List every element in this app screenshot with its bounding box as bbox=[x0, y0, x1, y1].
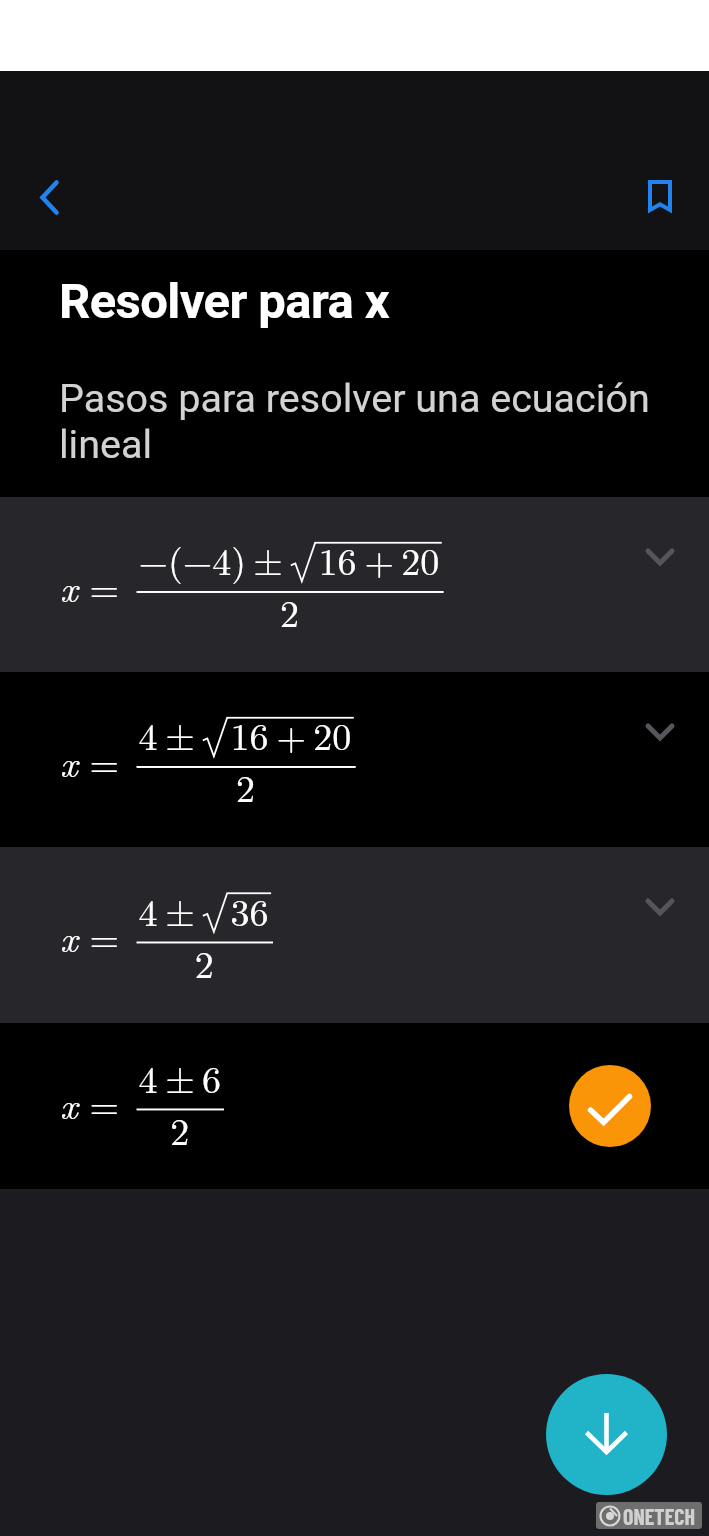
button[interactable]: Expandir paso bbox=[0, 847, 709, 1023]
button[interactable]: Resultado correcto bbox=[0, 1023, 709, 1189]
button[interactable]: Expandir paso bbox=[630, 702, 690, 762]
button[interactable]: Guardar bbox=[628, 164, 692, 228]
button[interactable]: Expandir paso bbox=[630, 527, 690, 587]
staticText: Pasos para resolver una ecuación lineal bbox=[59, 375, 709, 467]
button[interactable]: Atrás bbox=[17, 165, 81, 229]
button[interactable]: Expandir paso bbox=[630, 877, 690, 937]
staticText: ONETECH bbox=[623, 1503, 696, 1529]
button[interactable]: Resultado correcto bbox=[569, 1065, 651, 1147]
button[interactable]: Expandir paso bbox=[0, 497, 709, 672]
button[interactable]: Siguiente paso bbox=[546, 1374, 667, 1495]
button[interactable]: Expandir paso bbox=[0, 672, 709, 847]
staticText: Resolver para x bbox=[59, 273, 390, 330]
